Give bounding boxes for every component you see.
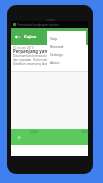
staticText: Renewal	[50, 44, 64, 49]
staticText: Kajian	[24, 34, 37, 40]
button[interactable]: Play	[15, 133, 23, 141]
staticText: 15 Januari 2019	[13, 46, 34, 50]
staticText: Perpanjang yang bers	[13, 48, 61, 54]
staticText: Ditumumkan termasuk bagi kedua belah dan…	[13, 54, 72, 66]
staticText: Pemutaran langkapan rincian	[17, 23, 59, 27]
staticText: Stop	[50, 36, 58, 41]
button[interactable]: Settings	[47, 50, 86, 58]
staticText: About	[50, 60, 60, 65]
button[interactable]: About	[47, 58, 86, 66]
staticText: 00:00	[30, 130, 38, 134]
button[interactable]: Renewal	[47, 42, 86, 50]
button[interactable]: Stop	[47, 34, 86, 42]
staticText: 00:00	[81, 130, 89, 134]
staticText: Settings	[50, 52, 63, 57]
button[interactable]: Back	[12, 28, 23, 45]
